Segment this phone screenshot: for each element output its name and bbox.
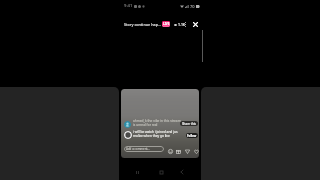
staticText: Share this [182, 122, 197, 126]
staticText: Story continue hap… [124, 22, 162, 27]
button[interactable]: Follow [186, 133, 198, 138]
button[interactable]: Emoji [167, 148, 174, 155]
staticText: is unreal for real [133, 123, 158, 127]
staticText: 70 [190, 4, 195, 9]
button[interactable]: Story continue hap… [124, 22, 167, 27]
button[interactable]: Like [193, 148, 199, 155]
staticText: Follow [187, 134, 197, 138]
button[interactable]: Share [184, 148, 191, 155]
staticText: realize when they go live [133, 134, 170, 138]
button[interactable]: Close [191, 19, 199, 29]
staticText: 1.1K [178, 22, 186, 27]
staticText: 9:41 [124, 3, 133, 9]
button[interactable]: Share this [180, 121, 198, 126]
button[interactable]: 1.1K [174, 22, 186, 27]
staticText: ahmed_k the vibe in this stream [133, 119, 181, 123]
button[interactable]: Add a comment… [124, 146, 164, 152]
button[interactable]: More options [183, 19, 187, 29]
button[interactable]: Home [156, 167, 166, 177]
button[interactable]: Recent apps [132, 167, 142, 177]
button[interactable]: Send a gift [175, 148, 182, 155]
staticText: i will be watch i joined and jus [133, 130, 178, 134]
button[interactable]: LIVE [162, 21, 170, 27]
staticText: LIVE [163, 22, 170, 26]
staticText: Add a comment… [126, 147, 150, 151]
button[interactable]: Back [177, 167, 187, 177]
